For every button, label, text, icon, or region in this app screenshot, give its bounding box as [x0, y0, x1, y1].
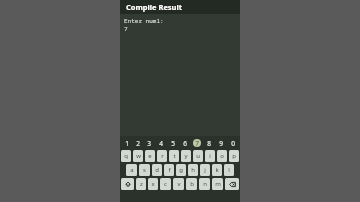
- button[interactable]: 8: [203, 138, 215, 148]
- button[interactable]: e: [145, 150, 155, 162]
- staticText: z: [140, 180, 143, 188]
- button[interactable]: Backspace: [225, 178, 239, 190]
- staticText: Compile Result: [126, 2, 182, 12]
- button[interactable]: x: [148, 178, 158, 190]
- staticText: 3: [147, 139, 151, 148]
- button[interactable]: 4: [155, 138, 167, 148]
- button[interactable]: t: [169, 150, 179, 162]
- button[interactable]: Enter num1:: [120, 14, 240, 136]
- button[interactable]: d: [152, 164, 162, 176]
- staticText: w: [136, 152, 141, 160]
- button[interactable]: Compile Result: [120, 0, 240, 14]
- button[interactable]: m: [212, 178, 223, 190]
- staticText: v: [177, 180, 181, 188]
- button[interactable]: h: [188, 164, 198, 176]
- button[interactable]: k: [212, 164, 222, 176]
- button[interactable]: f: [164, 164, 174, 176]
- staticText: 0: [231, 139, 235, 148]
- staticText: o: [220, 152, 224, 160]
- staticText: 2: [136, 139, 140, 148]
- staticText: 6: [183, 139, 187, 148]
- button[interactable]: j: [200, 164, 210, 176]
- staticText: 4: [159, 139, 163, 148]
- staticText: a: [130, 166, 134, 174]
- staticText: 1: [125, 139, 129, 148]
- button[interactable]: s: [139, 164, 150, 176]
- button[interactable]: n: [199, 178, 210, 190]
- staticText: 9: [219, 139, 223, 148]
- staticText: c: [164, 180, 167, 188]
- button[interactable]: Shift: [121, 178, 134, 190]
- staticText: d: [155, 166, 159, 174]
- button[interactable]: z: [136, 178, 146, 190]
- staticText: p: [232, 152, 236, 160]
- button[interactable]: b: [186, 178, 197, 190]
- button[interactable]: 2: [132, 138, 143, 148]
- staticText: 7: [124, 25, 128, 33]
- staticText: m: [215, 180, 221, 188]
- staticText: y: [184, 152, 188, 160]
- button[interactable]: 6: [179, 138, 191, 148]
- button[interactable]: c: [160, 178, 171, 190]
- staticText: q: [124, 152, 128, 160]
- button[interactable]: 5: [167, 138, 179, 148]
- button[interactable]: 9: [215, 138, 227, 148]
- button[interactable]: p: [229, 150, 239, 162]
- button[interactable]: 0: [227, 138, 239, 148]
- button[interactable]: 7: [191, 138, 203, 148]
- staticText: e: [148, 152, 152, 160]
- staticText: Enter num1:: [124, 17, 164, 25]
- staticText: f: [168, 166, 171, 174]
- button[interactable]: 3: [143, 138, 155, 148]
- button[interactable]: u: [193, 150, 203, 162]
- button[interactable]: g: [176, 164, 186, 176]
- staticText: j: [204, 166, 206, 174]
- button[interactable]: l: [224, 164, 234, 176]
- staticText: k: [215, 166, 219, 174]
- button[interactable]: a: [126, 164, 137, 176]
- staticText: r: [161, 152, 164, 160]
- button[interactable]: w: [133, 150, 143, 162]
- staticText: 7: [195, 139, 199, 148]
- staticText: s: [143, 166, 146, 174]
- staticText: l: [228, 166, 230, 174]
- staticText: g: [179, 166, 183, 174]
- button[interactable]: i: [205, 150, 215, 162]
- staticText: b: [190, 180, 194, 188]
- button[interactable]: r: [157, 150, 167, 162]
- staticText: 5: [171, 139, 175, 148]
- button[interactable]: v: [173, 178, 184, 190]
- staticText: 8: [207, 139, 211, 148]
- button[interactable]: y: [181, 150, 191, 162]
- staticText: n: [203, 180, 207, 188]
- staticText: x: [151, 180, 155, 188]
- staticText: i: [209, 152, 211, 160]
- button[interactable]: o: [217, 150, 227, 162]
- button[interactable]: q: [121, 150, 131, 162]
- staticText: h: [191, 166, 195, 174]
- button[interactable]: 1: [121, 138, 132, 148]
- staticText: t: [173, 152, 176, 160]
- staticText: u: [196, 152, 200, 160]
